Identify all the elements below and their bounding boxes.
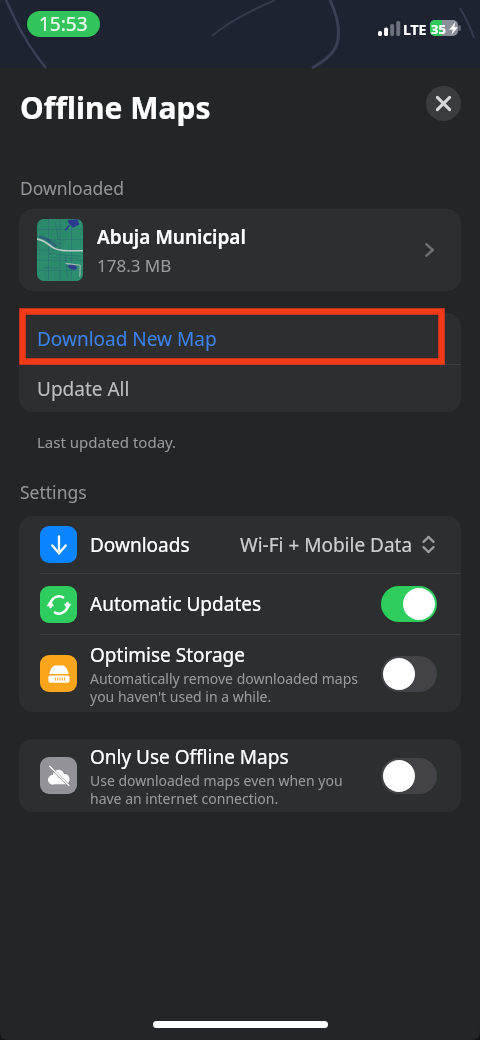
staticText: Downloads <box>90 532 190 558</box>
staticText: Download New Map <box>37 326 217 352</box>
staticText: Wi-Fi + Mobile Data <box>240 532 413 558</box>
button[interactable]: Automatic Updates <box>19 574 461 634</box>
staticText: Abuja Municipal <box>97 224 246 250</box>
staticText: Update All <box>37 376 130 402</box>
staticText: 178.3 MB <box>97 254 172 277</box>
button[interactable]: Abuja Municipal <box>19 209 461 291</box>
button[interactable]: Only Use Offline Maps <box>19 739 461 812</box>
button[interactable]: Download New Map <box>19 313 461 364</box>
button[interactable]: Downloads <box>19 516 461 573</box>
staticText: Settings <box>20 480 87 504</box>
button[interactable]: Update All <box>19 365 461 412</box>
button[interactable]: Toggle on <box>381 586 437 622</box>
button[interactable]: Close <box>426 86 461 121</box>
button[interactable]: Toggle off <box>381 758 437 794</box>
staticText: Only Use Offline Maps <box>90 744 289 770</box>
staticText: Automatic Updates <box>90 591 262 617</box>
staticText: Downloaded <box>20 176 124 200</box>
button[interactable]: Optimise Storage <box>19 635 461 712</box>
staticText: Use downloaded maps even when you have a… <box>90 771 343 808</box>
staticText: Offline Maps <box>20 87 211 128</box>
staticText: Last updated today. <box>37 432 177 452</box>
button[interactable]: Toggle off <box>381 656 437 692</box>
staticText: 35 <box>431 20 446 36</box>
staticText: 15:53 <box>39 11 88 37</box>
staticText: LTE <box>403 20 427 39</box>
staticText: Automatically remove downloaded maps you… <box>90 669 359 706</box>
staticText: Optimise Storage <box>90 642 246 668</box>
